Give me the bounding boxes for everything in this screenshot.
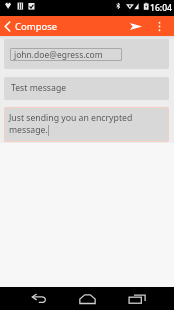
staticText: Just sending you an encrypted message. bbox=[9, 112, 136, 135]
button[interactable]: Send bbox=[124, 16, 148, 36]
button[interactable]: Back bbox=[0, 16, 15, 36]
button[interactable]: john.doe@egress.com bbox=[4, 39, 169, 69]
button[interactable]: Recent apps bbox=[112, 287, 161, 310]
button[interactable]: Test message bbox=[4, 77, 169, 100]
staticText: Test message bbox=[11, 82, 67, 94]
staticText: Compose bbox=[15, 20, 58, 33]
button[interactable]: More options bbox=[148, 16, 170, 36]
staticText: john.doe@egress.com bbox=[14, 49, 103, 61]
button[interactable]: Home bbox=[63, 287, 112, 310]
staticText: 16:04 bbox=[150, 2, 173, 14]
button[interactable]: Just sending you an encrypted message. bbox=[4, 107, 169, 142]
button[interactable]: Back bbox=[14, 287, 63, 310]
